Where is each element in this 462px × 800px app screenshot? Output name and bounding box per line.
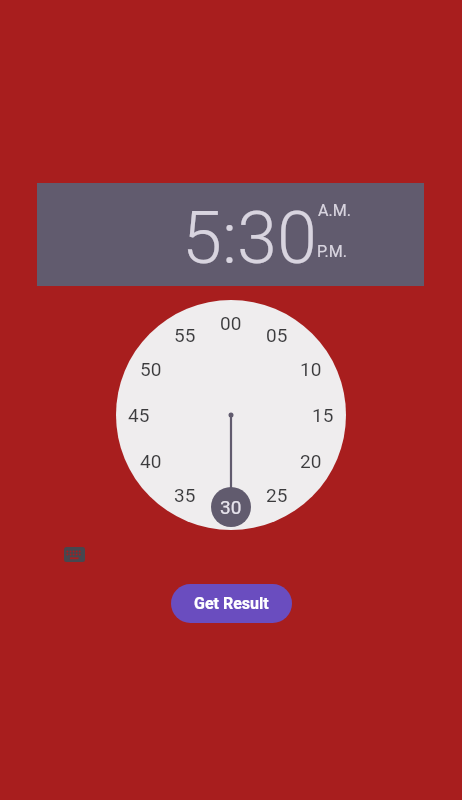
button[interactable]: Get Result — [171, 584, 292, 623]
staticText: 40 — [140, 450, 162, 472]
staticText: P.M. — [317, 242, 347, 261]
staticText: 55 — [174, 324, 196, 346]
staticText: 10 — [300, 358, 322, 380]
staticText: 45 — [128, 404, 150, 426]
button[interactable] — [64, 547, 85, 562]
staticText: Get Result — [194, 594, 269, 613]
staticText: A.M. — [318, 201, 351, 220]
staticText: 35 — [174, 484, 196, 506]
button[interactable]: 30 — [211, 487, 251, 527]
staticText: 25 — [266, 484, 288, 506]
staticText: 05 — [266, 324, 288, 346]
staticText: 50 — [140, 358, 162, 380]
staticText: 00 — [220, 312, 242, 334]
staticText: 5:30 — [182, 196, 317, 280]
staticText: 20 — [300, 450, 322, 472]
staticText: 30 — [220, 496, 242, 518]
staticText: 15 — [312, 404, 334, 426]
